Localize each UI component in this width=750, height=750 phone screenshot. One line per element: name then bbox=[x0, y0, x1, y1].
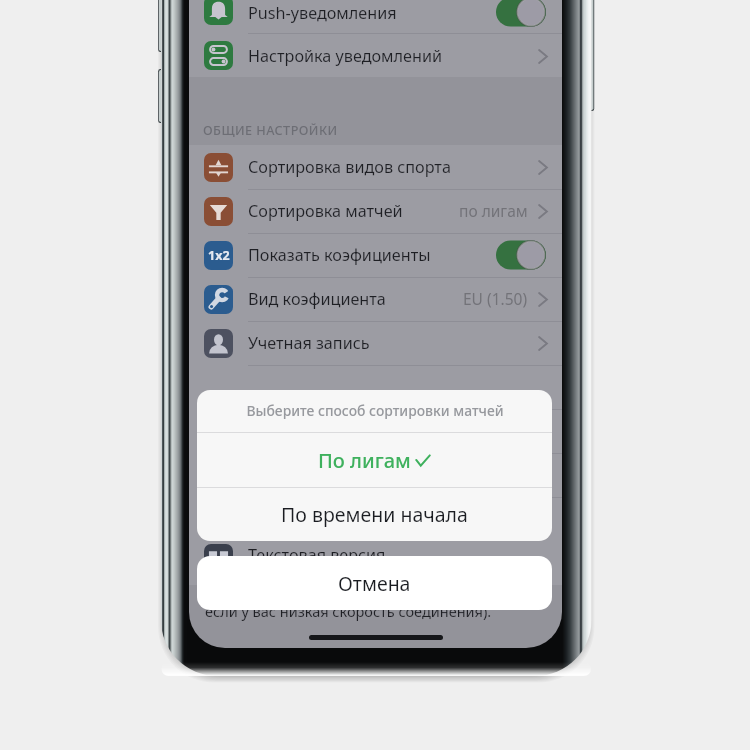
staticText: EU (1.50) bbox=[463, 288, 528, 309]
button[interactable] bbox=[189, 497, 562, 541]
button[interactable] bbox=[189, 0, 562, 33]
staticText: Push-уведомления bbox=[248, 2, 397, 24]
button[interactable]: По времени начала bbox=[197, 488, 552, 541]
staticText: Настройка уведомлений bbox=[248, 45, 442, 67]
staticText: По времени начала bbox=[281, 501, 468, 528]
button[interactable] bbox=[189, 453, 562, 497]
button[interactable] bbox=[189, 189, 562, 233]
button[interactable]: По лигам bbox=[197, 433, 552, 487]
staticText: Сортировка видов спорта bbox=[248, 156, 451, 178]
button[interactable] bbox=[189, 409, 562, 453]
staticText: По лигам bbox=[318, 447, 411, 474]
staticText: по лигам bbox=[459, 200, 528, 221]
button[interactable] bbox=[189, 365, 562, 409]
staticText: Показать коэфициенты bbox=[248, 244, 431, 266]
staticText: Отмена bbox=[338, 570, 411, 597]
button[interactable]: 1x2 bbox=[189, 233, 562, 277]
staticText: Учетная запись bbox=[248, 332, 370, 354]
staticText: Выберите способ сортировки матчей bbox=[246, 401, 504, 420]
staticText: ОБЩИЕ НАСТРОЙКИ bbox=[203, 122, 338, 139]
button[interactable] bbox=[189, 277, 562, 321]
button[interactable]: Toggle on bbox=[496, 0, 546, 27]
button[interactable] bbox=[189, 145, 562, 189]
button[interactable] bbox=[189, 536, 562, 580]
staticText: Сортировка матчей bbox=[248, 200, 403, 222]
staticText: Текстовая версия bbox=[248, 544, 386, 566]
button[interactable]: Отмена bbox=[197, 556, 552, 610]
staticText: 1x2 bbox=[208, 247, 230, 264]
button[interactable]: Toggle on bbox=[496, 240, 546, 270]
staticText: если у вас низкая скорость соединения). bbox=[205, 601, 492, 621]
button[interactable] bbox=[189, 33, 562, 77]
staticText: Вид коэфициента bbox=[248, 288, 386, 310]
button[interactable] bbox=[189, 321, 562, 365]
